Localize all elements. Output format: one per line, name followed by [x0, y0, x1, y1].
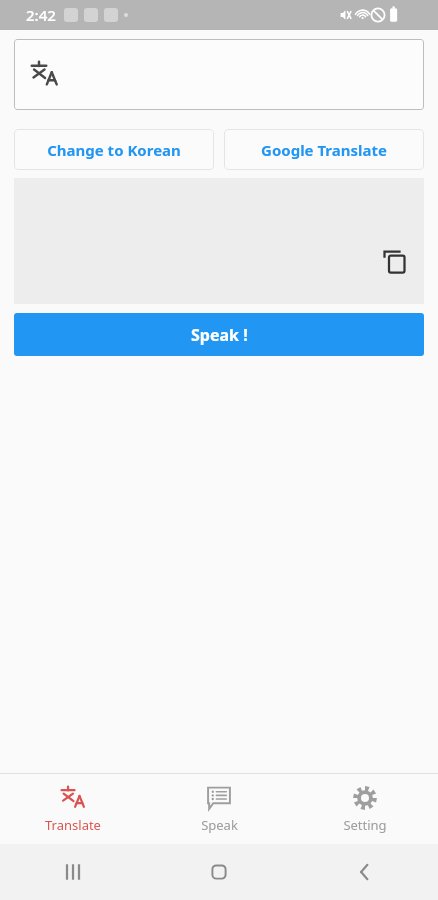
staticText: Speak ! — [191, 324, 248, 346]
staticText: Setting — [343, 816, 387, 834]
staticText: Speak — [201, 816, 238, 834]
staticText: Change to Korean — [47, 140, 181, 160]
button[interactable]: Speak ! — [14, 313, 424, 356]
staticText: Translate — [45, 816, 101, 834]
button[interactable]: Home — [146, 844, 292, 900]
button[interactable]: Back — [292, 844, 438, 900]
button[interactable]: Change to Korean — [14, 129, 214, 170]
button[interactable] — [14, 39, 424, 110]
staticText: 2:42 — [26, 5, 56, 25]
button[interactable]: Speak — [146, 774, 292, 844]
button[interactable]: Recent apps — [0, 844, 146, 900]
staticText: Google Translate — [261, 140, 387, 160]
button[interactable]: Setting — [292, 774, 438, 844]
button[interactable]: Copy translation — [378, 244, 412, 278]
button[interactable]: Translate — [0, 774, 146, 844]
button[interactable]: Google Translate — [224, 129, 424, 170]
